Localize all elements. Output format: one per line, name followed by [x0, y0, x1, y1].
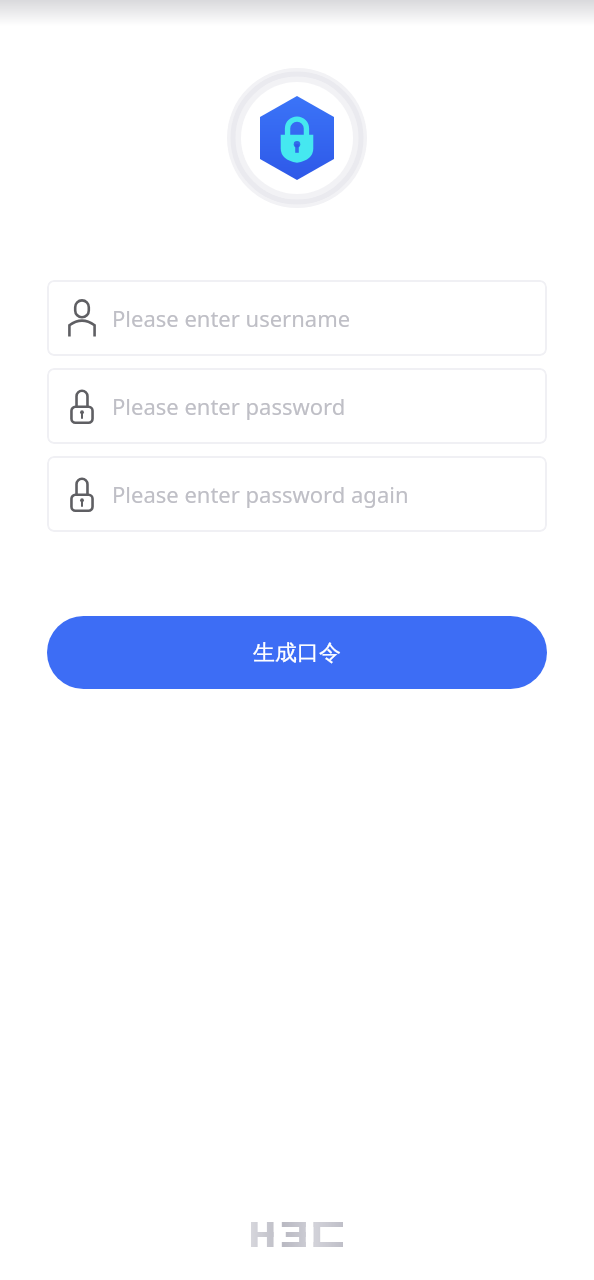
staticText: Please enter password again	[112, 479, 409, 509]
button[interactable]: Username field	[47, 280, 547, 356]
button[interactable]: Confirm password field	[47, 456, 547, 532]
button[interactable]: 生成口令	[47, 616, 547, 689]
button[interactable]: Password field	[47, 368, 547, 444]
staticText: Please enter username	[112, 303, 351, 333]
staticText: 生成口令	[253, 639, 341, 667]
staticText: Please enter password	[112, 391, 346, 421]
